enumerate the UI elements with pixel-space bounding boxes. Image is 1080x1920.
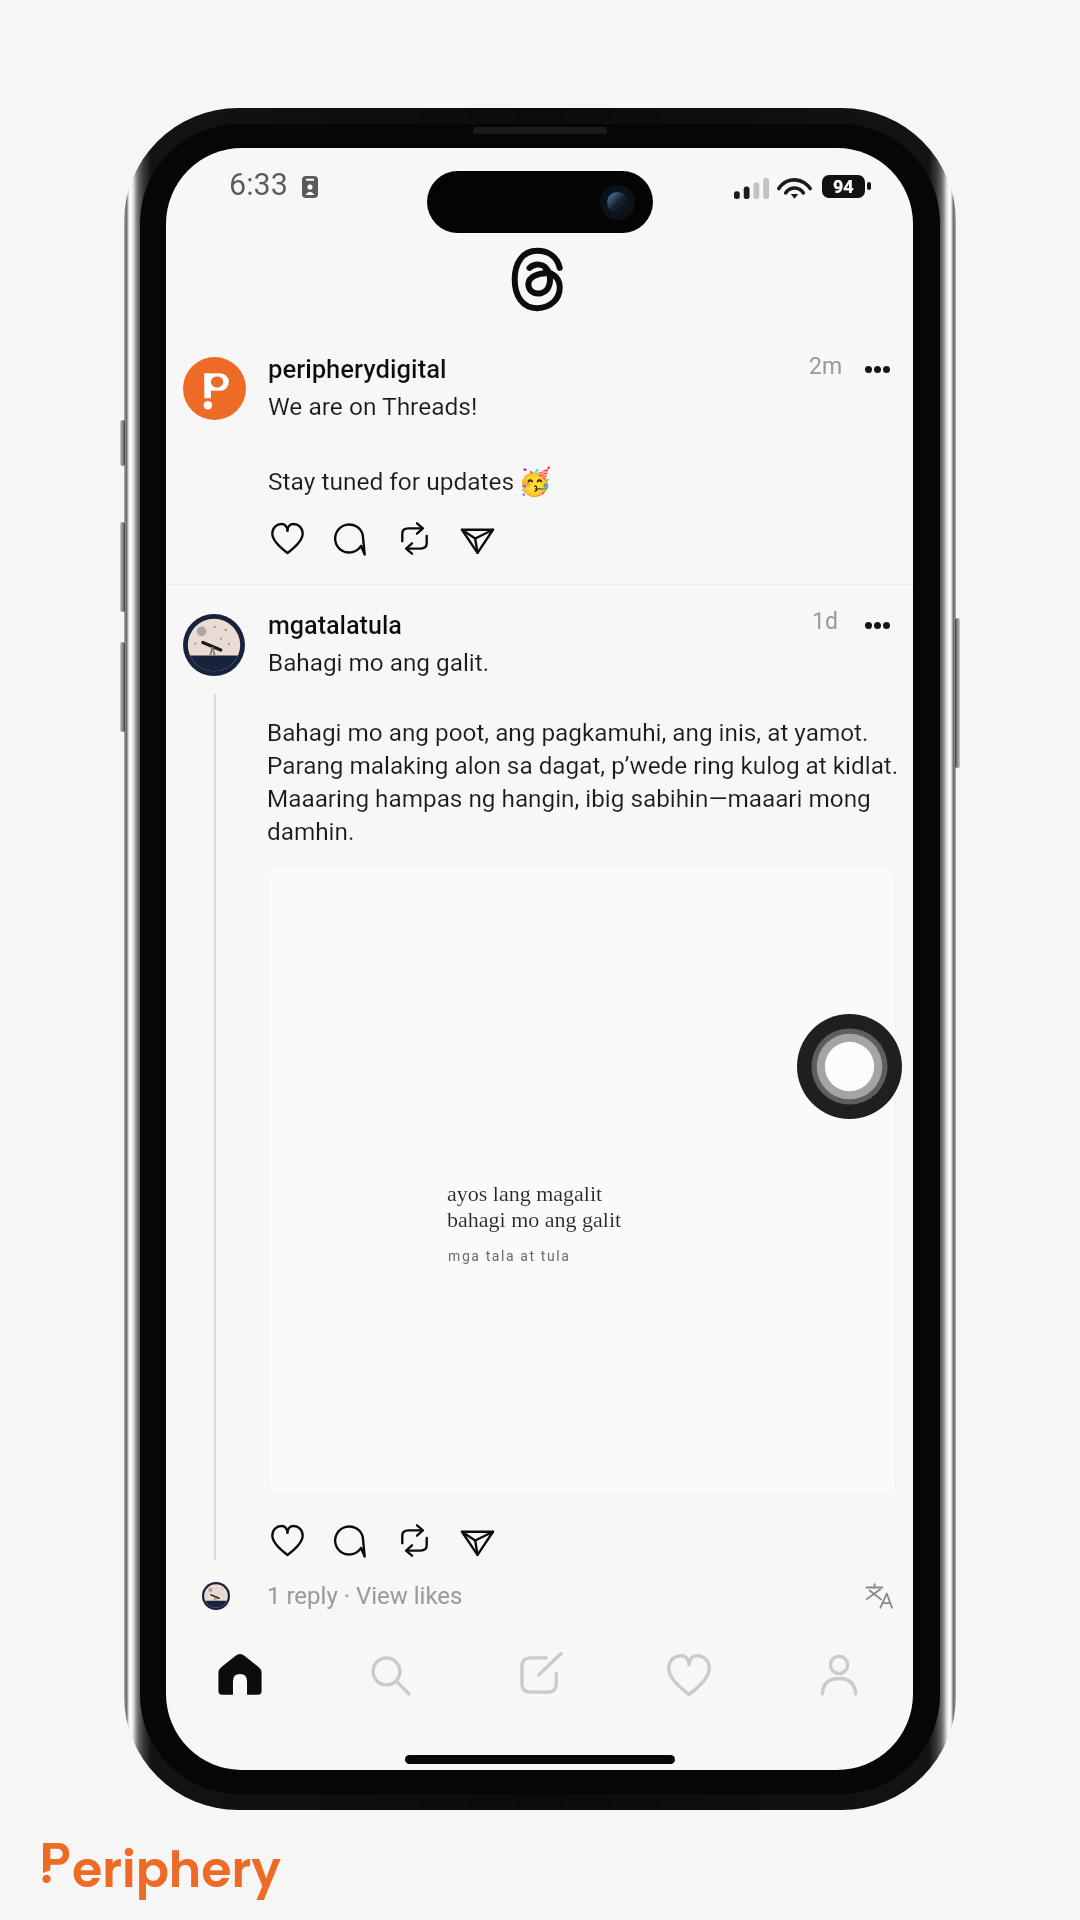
button[interactable]: Post by peripherydigital [183, 343, 895, 583]
button[interactable]: More options [852, 350, 902, 388]
staticText: 2m [809, 353, 843, 380]
button[interactable]: Like [264, 515, 310, 561]
staticText: 6:33 [229, 167, 288, 203]
button[interactable]: More options [852, 606, 902, 644]
button[interactable]: Attached image [268, 867, 896, 1495]
button[interactable]: peripherydigital [265, 353, 449, 385]
button[interactable]: mgatalatula [265, 609, 405, 641]
staticText: We are on Threads! [268, 392, 478, 421]
staticText: Stay tuned for updates [268, 467, 515, 496]
button[interactable] [264, 1579, 464, 1617]
button[interactable]: peripherydigital profile [183, 357, 246, 420]
staticText: mgatalatula [268, 611, 402, 640]
button[interactable]: Search [353, 1638, 427, 1712]
button[interactable]: Threads [511, 248, 568, 311]
staticText: 1 reply · View likes [267, 1582, 463, 1610]
staticText: Bahagi mo ang poot, ang pagkamuhi, ang i… [267, 718, 869, 746]
staticText: 94 [833, 176, 854, 197]
staticText: eriphery [72, 1836, 281, 1905]
button[interactable]: Like [264, 1517, 310, 1563]
staticText: Bahagi mo ang galit. [268, 648, 490, 676]
staticText: Maaaring hampas ng hangin, ibig sabihin—… [267, 784, 871, 812]
button[interactable]: Activity [652, 1638, 726, 1712]
staticText: Parang malaking alon sa dagat, p’wede ri… [267, 751, 899, 779]
staticText: mga tala at tula [448, 1248, 571, 1264]
button[interactable]: Profile [802, 1638, 876, 1712]
staticText: 🥳 [518, 466, 552, 498]
button[interactable]: mgatalatula profile [202, 1582, 230, 1610]
button[interactable]: Translate [857, 1574, 901, 1618]
button[interactable]: Reply [327, 1517, 373, 1563]
staticText: damhin. [267, 817, 355, 845]
button[interactable]: Reply [327, 515, 373, 561]
button[interactable]: Repost [391, 515, 437, 561]
button[interactable]: New thread [503, 1638, 577, 1712]
button[interactable]: Share [454, 1517, 500, 1563]
staticText: 1d [812, 608, 838, 635]
button[interactable]: Share [454, 515, 500, 561]
staticText: ayos lang magalit [447, 1181, 603, 1205]
staticText: bahagi mo ang galit [447, 1207, 622, 1231]
button[interactable]: mgatalatula profile [183, 614, 245, 676]
button[interactable]: Home [203, 1638, 277, 1712]
staticText: peripherydigital [268, 354, 447, 384]
other: Periphery [43, 1843, 72, 1884]
button[interactable]: Repost [391, 1517, 437, 1563]
